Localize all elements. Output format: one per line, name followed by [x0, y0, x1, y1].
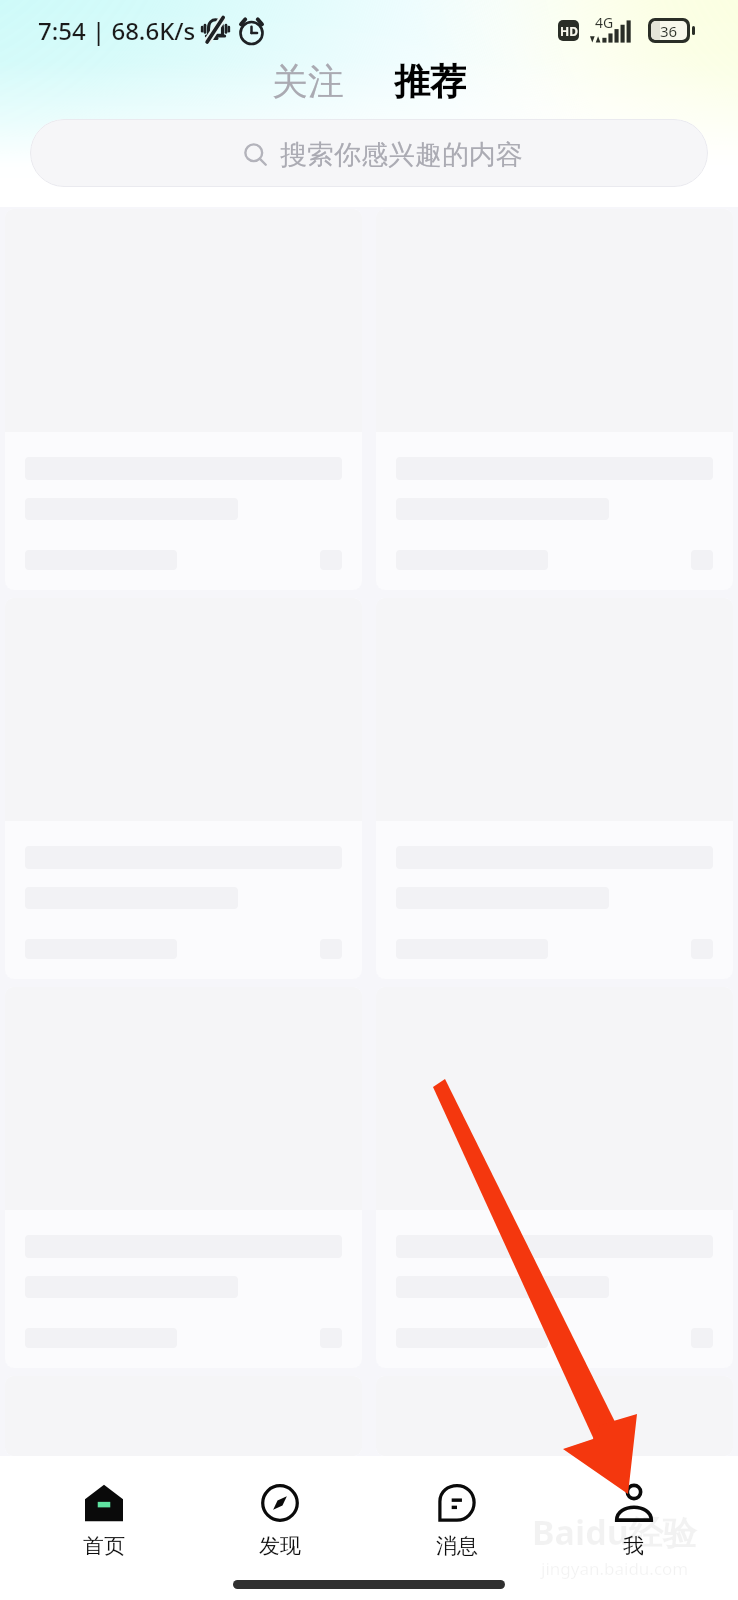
button[interactable]: 推荐 — [380, 53, 480, 109]
staticText: 我 — [623, 1533, 644, 1559]
staticText: 关注 — [272, 59, 344, 103]
other: Alarm — [236, 15, 267, 46]
staticText: HD — [560, 23, 578, 39]
staticText: 4G — [595, 13, 614, 32]
staticText: 36 — [660, 21, 678, 40]
button[interactable]: 关注 — [258, 53, 358, 109]
button[interactable]: Messages — [368, 1484, 545, 1562]
staticText: 首页 — [83, 1533, 125, 1559]
staticText: 消息 — [436, 1533, 478, 1559]
button[interactable]: Home — [16, 1484, 192, 1562]
button[interactable] — [376, 1376, 733, 1456]
button[interactable] — [5, 209, 362, 590]
staticText: 搜索你感兴趣的内容 — [280, 138, 523, 172]
staticText: Baidu经验 — [532, 1509, 697, 1555]
button[interactable]: Discover — [192, 1484, 368, 1562]
button[interactable] — [5, 598, 362, 979]
button[interactable] — [376, 209, 733, 590]
staticText: jingyan.baidu.com — [541, 1557, 689, 1580]
staticText: 7:54 | 68.6K/s — [38, 14, 196, 47]
button[interactable] — [376, 987, 733, 1368]
button[interactable]: 搜索你感兴趣的内容 — [30, 119, 708, 187]
button[interactable] — [376, 598, 733, 979]
staticText: 推荐 — [394, 59, 466, 103]
button[interactable] — [5, 987, 362, 1368]
other: Silent mode — [198, 15, 233, 45]
staticText: 发现 — [259, 1533, 301, 1559]
button[interactable]: Profile — [545, 1484, 722, 1562]
